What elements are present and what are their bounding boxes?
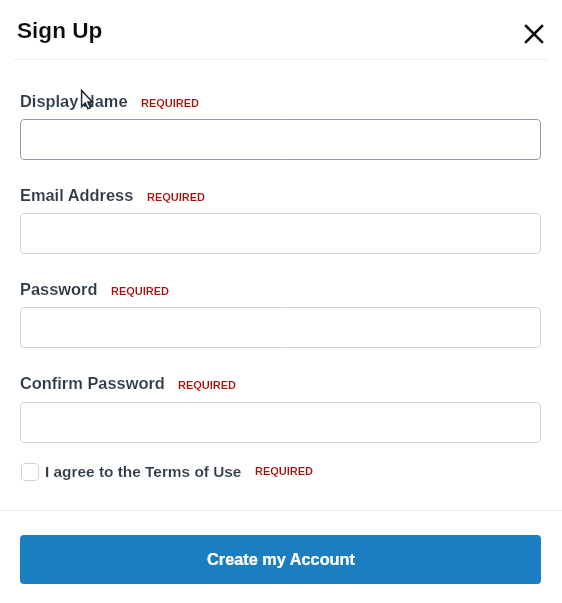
staticText: REQUIRED bbox=[111, 285, 170, 297]
staticText: REQUIRED bbox=[255, 465, 314, 477]
button[interactable]: Create my Account bbox=[20, 535, 541, 584]
staticText: Sign Up bbox=[17, 18, 103, 43]
staticText: Confirm Password bbox=[20, 374, 165, 392]
button[interactable]: Close bbox=[516, 16, 552, 52]
staticText: Email Address bbox=[20, 186, 134, 204]
button[interactable] bbox=[20, 402, 541, 443]
button[interactable] bbox=[20, 307, 541, 348]
staticText: Password bbox=[20, 280, 98, 298]
button[interactable]: I agree to the Terms of Use bbox=[20, 462, 314, 480]
staticText: Display Name bbox=[20, 92, 128, 110]
staticText: REQUIRED bbox=[141, 97, 200, 109]
button[interactable] bbox=[20, 119, 541, 160]
staticText: REQUIRED bbox=[178, 379, 237, 391]
staticText: REQUIRED bbox=[147, 191, 206, 203]
staticText: I agree to the Terms of Use bbox=[45, 463, 242, 480]
staticText: Create my Account bbox=[207, 550, 355, 568]
button[interactable] bbox=[20, 213, 541, 254]
